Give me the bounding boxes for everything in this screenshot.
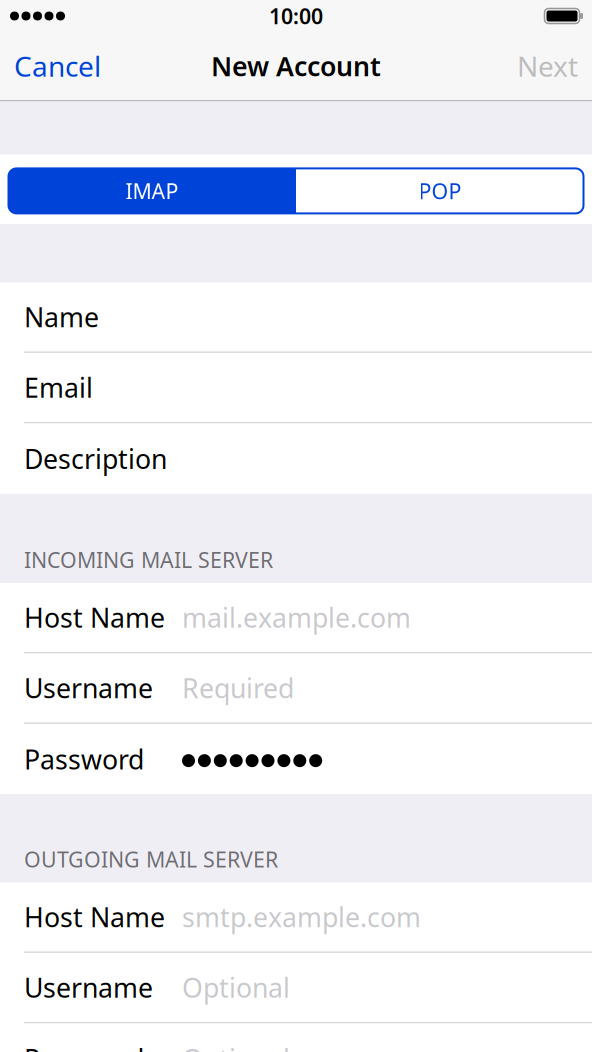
staticText: Cancel	[14, 47, 101, 85]
staticText: Email	[24, 370, 93, 405]
staticText: New Account	[211, 48, 381, 84]
button[interactable]: Host Name	[0, 882, 592, 953]
staticText: IMAP	[125, 177, 178, 205]
button[interactable]: Password	[0, 724, 592, 794]
button[interactable]: Cancel	[0, 32, 115, 100]
button[interactable]: Username	[0, 653, 592, 724]
staticText: POP	[418, 177, 461, 205]
staticText: OUTGOING MAIL SERVER	[24, 845, 278, 873]
button[interactable]: Email	[0, 353, 592, 423]
staticText: Password	[24, 1041, 144, 1052]
staticText: INCOMING MAIL SERVER	[24, 546, 273, 574]
button[interactable]: IMAP	[8, 168, 296, 213]
staticText: Password	[24, 741, 144, 777]
staticText: Host Name	[24, 899, 165, 935]
staticText: Description	[24, 441, 167, 476]
staticText: Host Name	[24, 600, 165, 635]
staticText: Required	[182, 670, 294, 706]
staticText: 10:00	[269, 2, 323, 30]
staticText: Username	[24, 670, 153, 706]
staticText: Optional	[182, 1041, 290, 1052]
button[interactable]: Password	[0, 1023, 592, 1052]
staticText: smtp.example.com	[182, 899, 421, 935]
button[interactable]: Host Name	[0, 583, 592, 653]
button[interactable]: Name	[0, 282, 592, 353]
staticText: Next	[517, 47, 578, 85]
button[interactable]: POP	[296, 168, 584, 213]
button[interactable]: Next	[503, 32, 592, 100]
staticText: Username	[24, 970, 153, 1005]
staticText: mail.example.com	[182, 600, 411, 635]
button[interactable]: Username	[0, 953, 592, 1023]
button[interactable]: Description	[0, 423, 592, 494]
staticText: Name	[24, 299, 99, 335]
staticText: Optional	[182, 970, 290, 1005]
